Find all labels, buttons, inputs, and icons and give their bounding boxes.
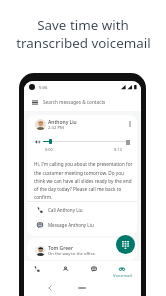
staticText: 0:00	[45, 147, 53, 152]
staticText: Tom Greer	[48, 245, 74, 252]
button[interactable]: Call Anthony Liu	[27, 202, 137, 217]
staticText: Call Anthony Liu	[48, 207, 83, 213]
button[interactable]: Messages	[83, 266, 105, 272]
other: More options	[128, 119, 132, 129]
button[interactable]: Menu	[27, 95, 139, 109]
button[interactable]: Tom Greer	[27, 238, 137, 260]
other: Menu	[32, 100, 38, 105]
staticText: 5:06	[39, 84, 48, 90]
button[interactable]: Voicemail	[111, 266, 133, 279]
staticText: On the way to the office.	[48, 251, 97, 257]
button[interactable]: Anthony Liu	[27, 115, 137, 236]
staticText: 0:13	[114, 147, 122, 152]
button[interactable]: Phone	[26, 266, 48, 272]
staticText: Hi, I'm calling you about the presentati…	[34, 161, 136, 200]
staticText: Message Anthony Liu	[48, 222, 94, 228]
other: Speaker	[35, 140, 39, 144]
staticText: Anthony Liu	[48, 119, 77, 126]
staticText: Save time with	[37, 16, 129, 34]
staticText: transcribed voicemail	[16, 34, 151, 52]
button[interactable]: Dial pad	[116, 235, 135, 254]
staticText: 2:32 PM	[48, 125, 64, 131]
other: Back	[46, 284, 54, 292]
staticText: Search messages & contacts	[43, 99, 106, 105]
button[interactable]: Message Anthony Liu	[27, 217, 137, 232]
staticText: Voicemail	[113, 273, 132, 279]
button[interactable]: Contacts	[55, 266, 77, 272]
